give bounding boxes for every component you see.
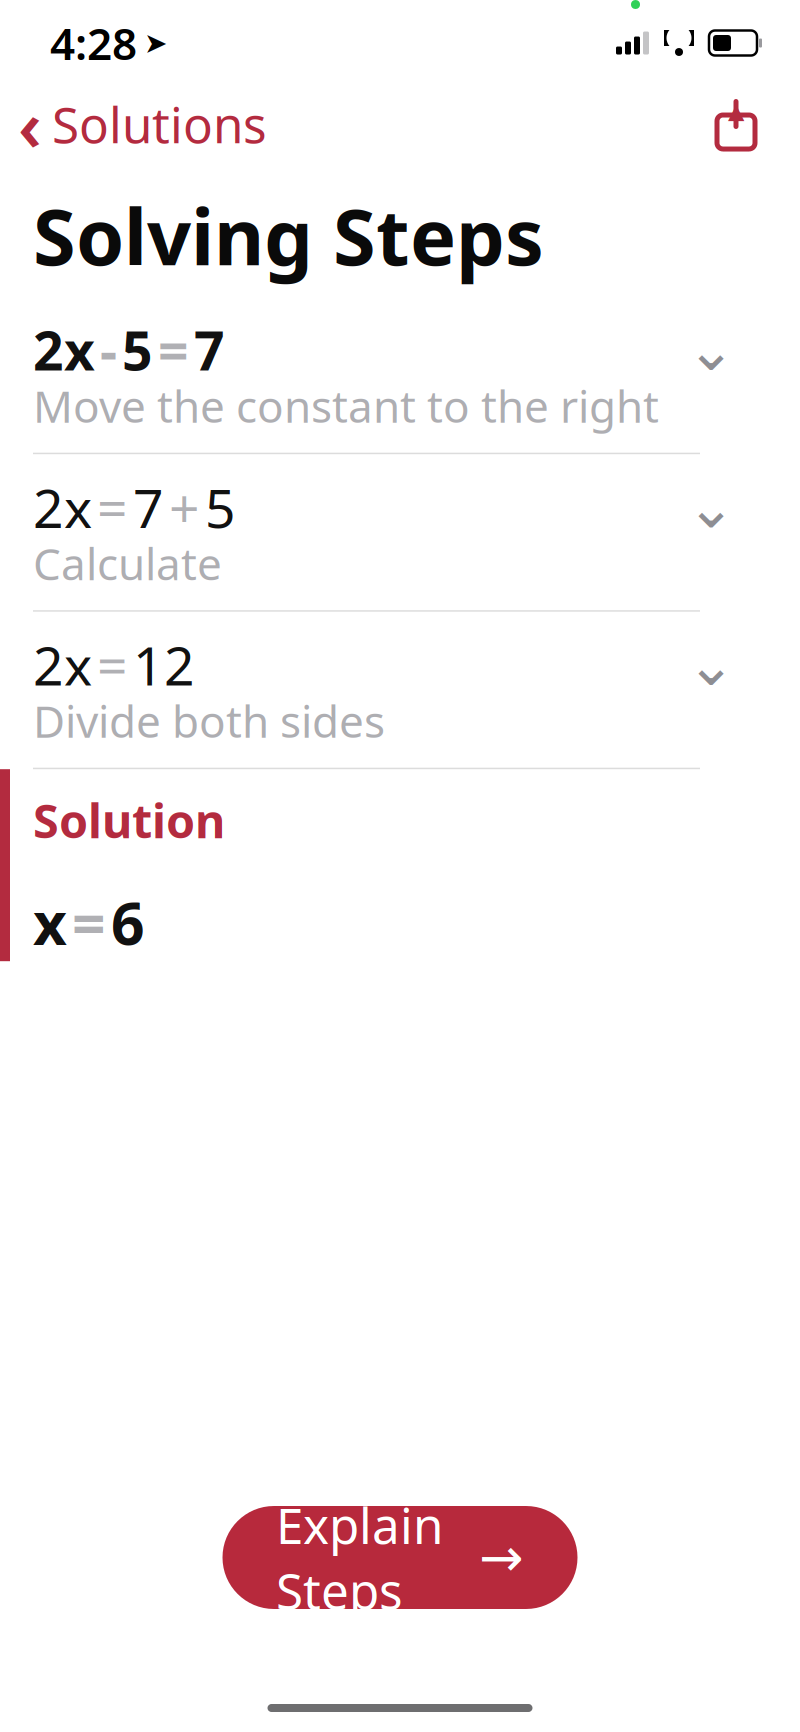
staticText: x (33, 883, 67, 961)
staticText: Move the constant to the right (33, 376, 659, 435)
staticText: Solutions (52, 91, 267, 157)
staticText: 4:28 (50, 14, 137, 72)
staticText: = (158, 314, 189, 385)
staticText: 7 (194, 314, 225, 385)
staticText: 5 (122, 314, 153, 385)
staticText: = (72, 883, 106, 961)
staticText: Solving Steps (33, 184, 544, 287)
staticText: Calculate (33, 534, 222, 592)
staticText: = (97, 629, 128, 700)
button[interactable]: Explain Steps (222, 1506, 577, 1609)
button[interactable]: 2x (0, 319, 800, 431)
staticText: + (169, 472, 200, 543)
staticText: = (97, 472, 128, 543)
staticText: Divide both sides (33, 691, 385, 750)
staticText: ‹ (18, 78, 42, 170)
staticText: - (100, 314, 117, 385)
staticText: ➤ (144, 27, 167, 59)
staticText: ⌄ (686, 474, 735, 540)
staticText: Explain Steps (276, 1492, 443, 1623)
staticText: Solution (33, 789, 225, 851)
staticText: ⌄ (686, 631, 735, 698)
button[interactable]: 2x (0, 476, 800, 588)
staticText: → (479, 1527, 524, 1588)
staticText: 12 (133, 629, 195, 700)
staticText: 7 (133, 472, 164, 543)
staticText: 2x (33, 629, 92, 700)
staticText: 5 (205, 472, 236, 543)
button[interactable]: Share (702, 94, 770, 154)
staticText: ▲ (728, 99, 744, 123)
staticText: ⌄ (686, 316, 735, 383)
staticText: 6 (111, 883, 145, 961)
button[interactable]: ‹ (0, 72, 267, 176)
button[interactable]: 2x (0, 634, 800, 746)
staticText: 2x (33, 314, 95, 385)
staticText: 2x (33, 472, 92, 543)
